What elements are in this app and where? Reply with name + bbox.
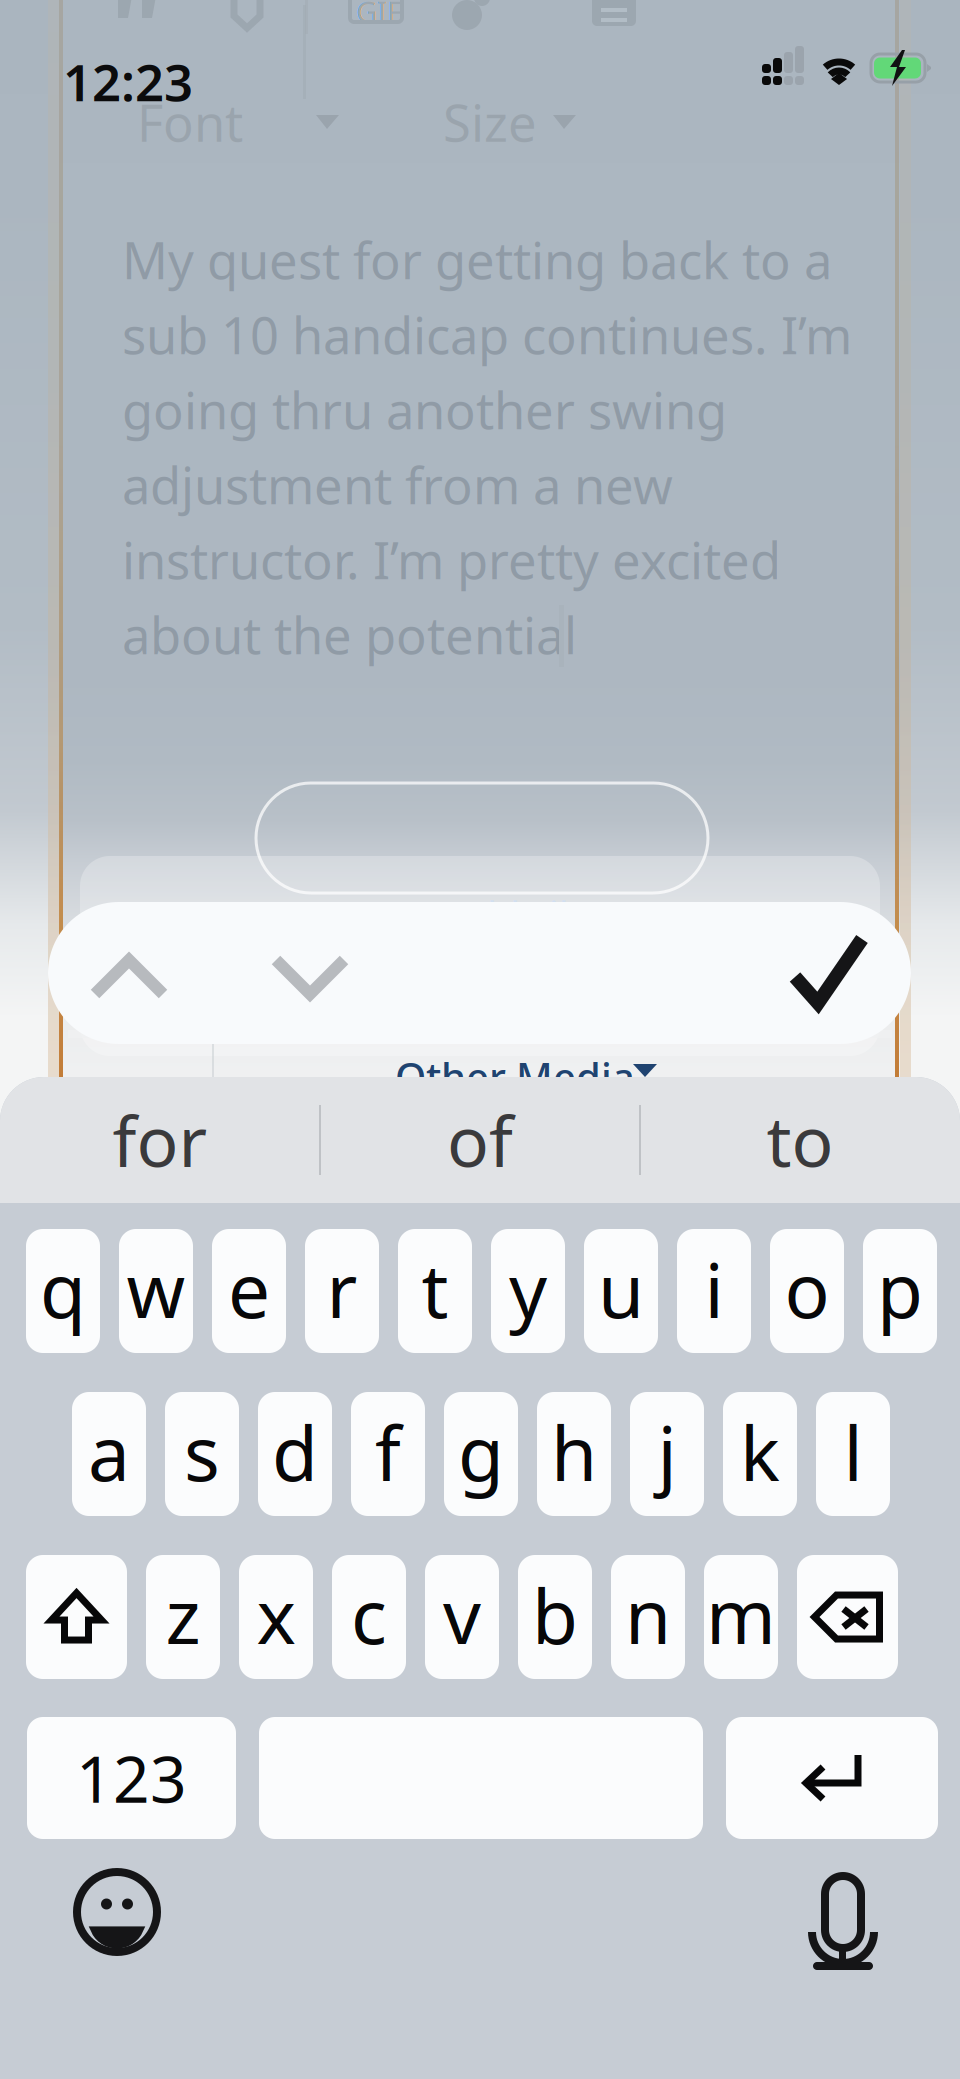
- button[interactable]: Previous field: [45, 902, 195, 1044]
- button[interactable]: v: [425, 1555, 499, 1679]
- staticText: k: [740, 1402, 780, 1502]
- button[interactable]: l: [816, 1392, 890, 1516]
- button[interactable]: i: [677, 1229, 751, 1353]
- staticText: of: [447, 1094, 513, 1186]
- button[interactable]: b: [518, 1555, 592, 1679]
- button[interactable]: to: [641, 1077, 959, 1203]
- button[interactable]: Font: [137, 101, 339, 143]
- staticText: s: [184, 1402, 220, 1502]
- button[interactable]: y: [491, 1229, 565, 1353]
- button[interactable]: Done: [753, 902, 903, 1044]
- staticText: Font: [137, 88, 243, 156]
- staticText: GIF: [356, 0, 402, 31]
- staticText: going thru another swing: [122, 376, 727, 443]
- staticText: z: [165, 1565, 200, 1665]
- button[interactable]: m: [704, 1555, 778, 1679]
- staticText: i: [704, 1239, 723, 1339]
- staticText: Size: [443, 88, 537, 156]
- staticText: d: [272, 1402, 318, 1502]
- staticText: b: [532, 1565, 578, 1665]
- staticText: l: [843, 1402, 862, 1502]
- staticText: to: [766, 1094, 833, 1186]
- staticText: q: [40, 1239, 86, 1339]
- staticText: n: [625, 1565, 671, 1665]
- staticText: 123: [76, 1735, 187, 1820]
- staticText: sub 10 handicap continues. I’m: [122, 301, 852, 368]
- staticText: c: [351, 1565, 387, 1665]
- staticText: Add Files: [450, 890, 608, 940]
- button[interactable]: f: [351, 1392, 425, 1516]
- staticText: x: [256, 1565, 295, 1665]
- staticText: Other Media: [395, 1050, 635, 1103]
- staticText: 12:23: [63, 48, 193, 115]
- staticText: g: [458, 1402, 504, 1502]
- staticText: a: [88, 1402, 130, 1502]
- staticText: e: [228, 1239, 270, 1339]
- staticText: adjustment from a new: [122, 451, 673, 518]
- button[interactable]: h: [537, 1392, 611, 1516]
- button[interactable]: j: [630, 1392, 704, 1516]
- button[interactable]: r: [305, 1229, 379, 1353]
- button[interactable]: o: [770, 1229, 844, 1353]
- button[interactable]: Delete: [797, 1555, 898, 1679]
- staticText: My quest for getting back to a: [122, 226, 832, 293]
- button[interactable]: z: [146, 1555, 220, 1679]
- staticText: about the potential: [122, 601, 577, 668]
- staticText: h: [551, 1402, 597, 1502]
- button[interactable]: s: [165, 1392, 239, 1516]
- button[interactable]: Dictate: [808, 1864, 878, 1960]
- staticText: u: [598, 1239, 644, 1339]
- button[interactable]: g: [444, 1392, 518, 1516]
- button[interactable]: q: [26, 1229, 100, 1353]
- staticText: y: [509, 1239, 547, 1339]
- staticText: o: [784, 1239, 829, 1339]
- button[interactable]: p: [863, 1229, 937, 1353]
- button[interactable]: Emoji keyboard: [76, 1871, 158, 1953]
- button[interactable]: Return: [726, 1717, 938, 1839]
- button[interactable]: Next field: [226, 902, 376, 1044]
- button[interactable]: w: [119, 1229, 193, 1353]
- staticText: t: [421, 1239, 448, 1339]
- button[interactable]: a: [72, 1392, 146, 1516]
- staticText: instructor. I’m pretty excited: [122, 526, 781, 593]
- button[interactable]: d: [258, 1392, 332, 1516]
- button[interactable]: Other Media: [395, 1050, 675, 1094]
- button[interactable]: t: [398, 1229, 472, 1353]
- button[interactable]: 123: [27, 1717, 236, 1839]
- staticText: p: [877, 1239, 923, 1339]
- staticText: j: [657, 1402, 676, 1502]
- staticText: v: [443, 1565, 481, 1665]
- button[interactable]: Shift: [26, 1555, 127, 1679]
- button[interactable]: for: [1, 1077, 319, 1203]
- staticText: m: [706, 1565, 776, 1665]
- button[interactable]: Size: [443, 101, 623, 143]
- staticText: f: [375, 1402, 401, 1502]
- button[interactable]: e: [212, 1229, 286, 1353]
- button[interactable]: of: [321, 1077, 639, 1203]
- staticText: w: [126, 1239, 185, 1339]
- button[interactable]: k: [723, 1392, 797, 1516]
- button[interactable]: Space: [259, 1717, 703, 1839]
- button[interactable]: c: [332, 1555, 406, 1679]
- button[interactable]: x: [239, 1555, 313, 1679]
- button[interactable]: u: [584, 1229, 658, 1353]
- staticText: r: [326, 1239, 357, 1339]
- staticText: for: [112, 1094, 207, 1186]
- button[interactable]: n: [611, 1555, 685, 1679]
